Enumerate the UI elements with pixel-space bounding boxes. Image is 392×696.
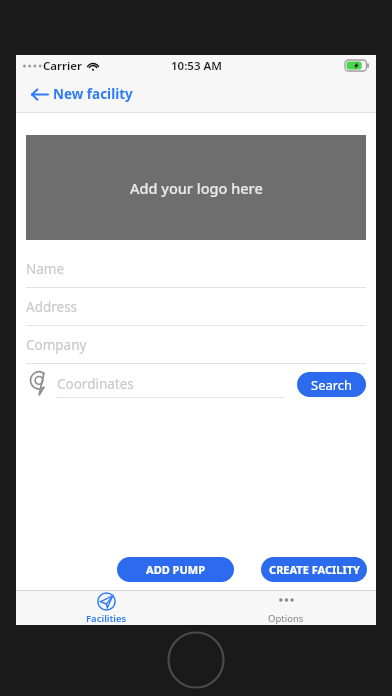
staticText: ADD PUMP [146,562,205,577]
button[interactable]: Name [26,250,366,288]
staticText: Coordinates [57,375,134,393]
button[interactable]: CREATE FACILITY [261,557,367,582]
button[interactable]: Search [297,372,366,397]
staticText: Carrier [43,58,83,74]
button[interactable]: Company [26,326,366,364]
button[interactable]: Address [26,288,366,326]
staticText: CREATE FACILITY [269,562,360,577]
button[interactable]: Add your logo here [26,135,366,240]
button[interactable]: Location [26,369,52,399]
button[interactable]: Coordinates [57,371,285,398]
staticText: Add your logo here [130,178,263,198]
staticText: 10:53 AM [171,58,222,74]
staticText: Facilities [86,612,127,625]
staticText: Address [26,298,78,316]
staticText: Name [26,260,65,278]
button[interactable]: Facilities [16,591,196,625]
staticText: Search [311,376,353,394]
button[interactable]: ADD PUMP [117,557,234,582]
staticText: Options [268,612,304,625]
button[interactable]: Options [196,591,376,625]
button[interactable]: New facility [31,85,133,103]
staticText: Company [26,336,87,354]
staticText: New facility [53,85,133,103]
button[interactable]: Home [167,631,225,689]
